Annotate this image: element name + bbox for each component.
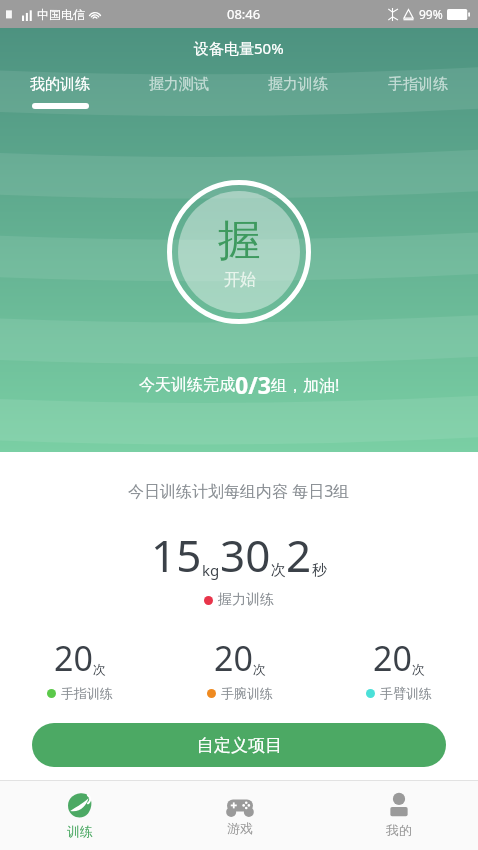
staticText: kg (202, 560, 220, 580)
staticText: 握力测试 (149, 75, 209, 94)
staticText: 手指训练 (61, 685, 113, 701)
staticText: 99% (419, 6, 443, 22)
staticText: 自定义项目 (197, 735, 282, 756)
button[interactable]: 20 (160, 635, 319, 701)
staticText: 游戏 (227, 820, 253, 836)
staticText: 我的 (386, 822, 412, 838)
staticText: 2 (286, 525, 312, 585)
button[interactable]: 我的训练 (0, 75, 119, 109)
button[interactable]: 20 (0, 635, 160, 701)
button[interactable]: 训练 (0, 781, 160, 850)
staticText: 20 (54, 635, 93, 681)
button[interactable]: 游戏 (160, 781, 319, 850)
staticText: 次 (271, 561, 286, 580)
button[interactable]: 手指训练 (358, 75, 478, 103)
staticText: 我的训练 (30, 75, 90, 94)
staticText: 开始 (224, 270, 256, 290)
staticText: 今日训练计划每组内容 每日3组 (128, 480, 350, 502)
staticText: 手指训练 (388, 75, 448, 94)
staticText: 手腕训练 (221, 685, 273, 701)
staticText: 15 (151, 525, 202, 585)
button[interactable]: 握 (166, 179, 312, 325)
staticText: 次 (253, 661, 266, 677)
staticText: 握 (218, 214, 261, 268)
staticText: 组，加油! (271, 374, 340, 396)
staticText: 设备电量50% (194, 38, 284, 58)
button[interactable]: 我的 (319, 781, 478, 850)
staticText: 秒 (312, 561, 327, 580)
staticText: 中国电信 (37, 7, 85, 22)
staticText: 0/3 (235, 369, 271, 400)
staticText: 今天训练完成 (139, 375, 235, 395)
button[interactable]: 握力测试 (119, 75, 238, 103)
staticText: 训练 (67, 823, 93, 839)
button[interactable]: 自定义项目 (32, 723, 446, 767)
button[interactable]: 握力训练 (238, 75, 358, 103)
staticText: 手臂训练 (380, 685, 432, 701)
button[interactable]: 20 (319, 635, 478, 701)
staticText: 次 (93, 661, 106, 677)
staticText: 次 (412, 661, 425, 677)
staticText: 20 (214, 635, 253, 681)
staticText: 30 (220, 525, 271, 585)
staticText: 20 (373, 635, 412, 681)
staticText: 握力训练 (268, 75, 328, 94)
staticText: 08:46 (227, 5, 261, 23)
staticText: 握力训练 (218, 591, 274, 609)
